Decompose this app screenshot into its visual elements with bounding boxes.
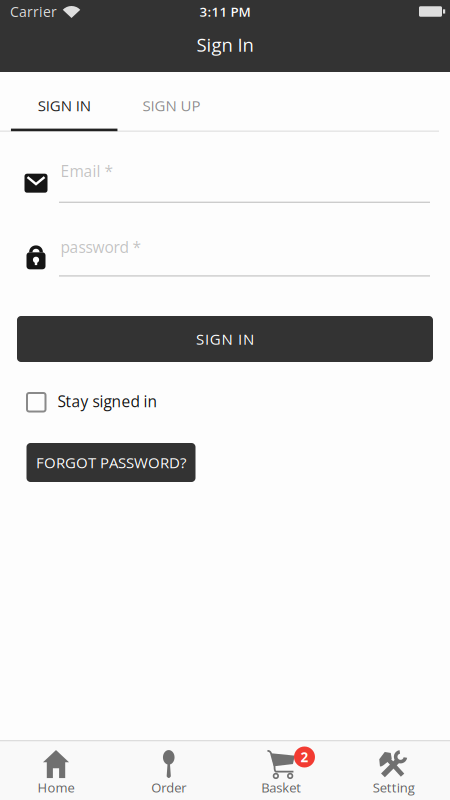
button[interactable]: SIGN IN [17, 316, 433, 362]
button[interactable]: SIGN UP [118, 77, 225, 133]
button[interactable]: Setting [337, 741, 450, 800]
staticText: Stay signed in [57, 391, 157, 412]
staticText: password * [60, 236, 141, 257]
staticText: 3:11 PM [199, 2, 250, 20]
staticText: Basket [261, 779, 301, 796]
button[interactable]: FORGOT PASSWORD? [26, 443, 195, 482]
staticText: Carrier [10, 2, 57, 21]
staticText: Setting [373, 779, 415, 796]
staticText: SIGN IN [38, 95, 91, 116]
staticText: SIGN UP [142, 95, 200, 116]
staticText: Order [151, 779, 186, 796]
staticText: FORGOT PASSWORD? [36, 452, 186, 473]
staticText: Sign In [196, 32, 253, 57]
staticText: SIGN IN [196, 329, 254, 349]
button[interactable]: SIGN IN [11, 77, 118, 133]
staticText: 2 [300, 748, 308, 766]
button[interactable]: Stay signed in [26, 392, 206, 413]
button[interactable]: Basket [225, 741, 337, 800]
staticText: Email * [60, 160, 113, 181]
button[interactable]: Home [0, 741, 112, 800]
staticText: Home [37, 779, 74, 796]
button[interactable]: Order [112, 741, 225, 800]
